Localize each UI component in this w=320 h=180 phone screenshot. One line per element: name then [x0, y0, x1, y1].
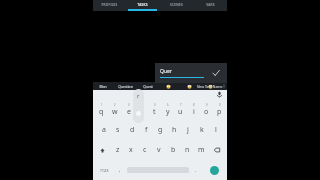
staticText: z [116, 145, 120, 155]
button[interactable]: SCENES [159, 0, 193, 9]
staticText: Mon [99, 84, 107, 89]
button[interactable]: s [111, 120, 125, 140]
staticText: c [143, 145, 147, 155]
button[interactable]: v [152, 140, 166, 160]
staticText: w [112, 107, 118, 117]
staticText: m [198, 145, 205, 155]
button[interactable]: x [124, 140, 138, 160]
button[interactable]: Emoji suggestion [200, 82, 221, 90]
button[interactable]: Mon [93, 82, 113, 90]
button[interactable]: Quest [137, 82, 158, 90]
staticText: y [166, 107, 170, 117]
staticText: 6 [167, 103, 169, 107]
staticText: . [195, 167, 197, 174]
button[interactable]: Question [113, 82, 137, 90]
button[interactable]: Shift [94, 140, 111, 160]
staticText: a [102, 125, 106, 135]
button[interactable]: m [194, 140, 208, 160]
staticText: d [130, 125, 135, 135]
staticText: q [99, 107, 104, 117]
button[interactable]: l [209, 120, 223, 140]
button[interactable]: Emoji suggestion [179, 82, 200, 90]
button[interactable]: 1 [94, 99, 108, 120]
staticText: , [119, 167, 121, 174]
button[interactable]: , [113, 161, 127, 179]
staticText: b [171, 145, 176, 155]
button[interactable]: Confirm task name [210, 67, 222, 79]
button[interactable]: 0 [213, 99, 226, 120]
button[interactable]: TASKS [126, 0, 159, 9]
button[interactable]: g [153, 120, 167, 140]
staticText: o [204, 107, 209, 117]
staticText: x [129, 145, 133, 155]
button[interactable]: 9 [200, 99, 213, 120]
staticText: New Task Name [197, 84, 223, 89]
button[interactable]: Backspace [208, 140, 226, 160]
staticText: 3 [128, 103, 130, 107]
button[interactable]: VARS [193, 0, 227, 9]
staticText: j [187, 125, 189, 135]
staticText: Question [118, 84, 133, 89]
button[interactable]: n [180, 140, 194, 160]
button[interactable]: . [189, 161, 203, 179]
button[interactable]: 2 [108, 99, 122, 120]
staticText: k [200, 125, 204, 135]
button[interactable]: Emoji suggestion [158, 82, 179, 90]
staticText: i [193, 107, 195, 117]
staticText: 2 [114, 103, 116, 107]
button[interactable]: a [97, 120, 111, 140]
staticText: f [145, 125, 148, 135]
staticText: g [158, 125, 163, 135]
button[interactable]: Quer [155, 63, 227, 83]
button[interactable]: d [125, 120, 139, 140]
staticText: VARS [206, 3, 215, 7]
staticText: l [215, 125, 217, 135]
staticText: 5 [154, 103, 156, 107]
staticText: SCENES [170, 3, 183, 7]
staticText: h [172, 125, 177, 135]
button[interactable]: Voice input [216, 91, 223, 98]
staticText: PROFILES [101, 3, 118, 7]
button[interactable]: 3 [122, 99, 135, 120]
button[interactable]: Enter [210, 166, 219, 175]
staticText: s [116, 125, 120, 135]
staticText: r [137, 92, 140, 100]
staticText: p [217, 107, 222, 117]
staticText: ?123 [100, 168, 109, 173]
staticText: v [157, 145, 161, 155]
staticText: n [185, 145, 190, 155]
button[interactable]: k [195, 120, 209, 140]
staticText: TASKS [137, 3, 148, 7]
staticText: t [153, 107, 156, 117]
button[interactable]: b [166, 140, 180, 160]
staticText: 1 [101, 103, 103, 107]
button[interactable]: 4 [135, 99, 148, 120]
staticText: u [178, 107, 183, 117]
button[interactable]: 5 [148, 99, 161, 120]
button[interactable]: ?123 [95, 161, 113, 179]
staticText: Quer [160, 68, 172, 75]
button[interactable]: 6 [161, 99, 174, 120]
staticText: r [140, 107, 143, 117]
button[interactable]: More suggestions [221, 82, 227, 90]
staticText: Quest [143, 84, 153, 89]
staticText: 7 [180, 103, 182, 107]
button[interactable]: 7 [174, 99, 187, 120]
button[interactable]: z [111, 140, 124, 160]
staticText: e [127, 107, 131, 117]
staticText: 0 [219, 103, 221, 107]
button[interactable]: j [181, 120, 195, 140]
button[interactable]: 8 [187, 99, 200, 120]
button[interactable]: h [167, 120, 181, 140]
button[interactable]: PROFILES [93, 0, 126, 9]
staticText: 9 [206, 103, 208, 107]
staticText: 8 [193, 103, 195, 107]
button[interactable]: Key r [133, 89, 144, 123]
button[interactable]: f [139, 120, 153, 140]
button[interactable]: c [138, 140, 152, 160]
